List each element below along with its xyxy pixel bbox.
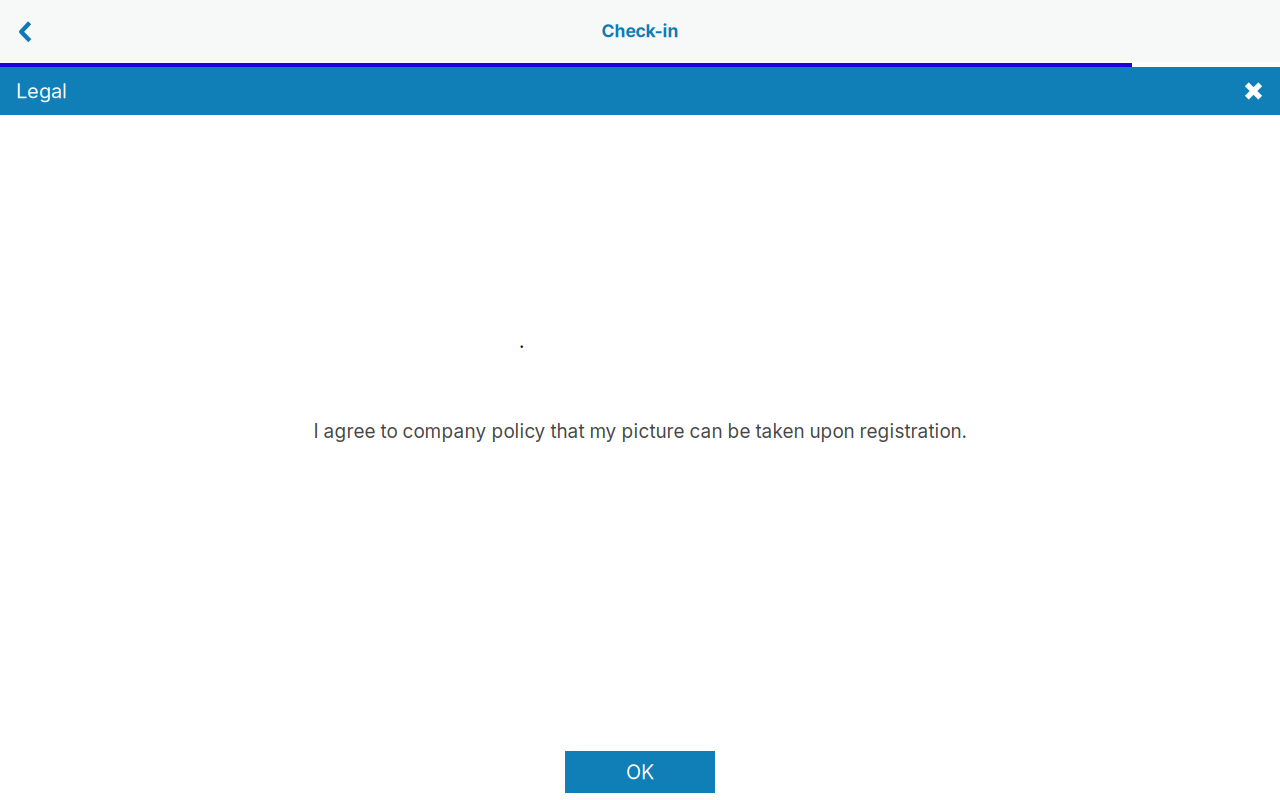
staticText: OK [626,760,654,784]
button[interactable]: Close [1229,67,1278,115]
button[interactable]: OK [565,751,715,793]
staticText: Legal [16,79,67,103]
staticText: I agree to company policy that my pictur… [313,419,966,442]
staticText: . [519,329,524,352]
staticText: Check-in [601,20,678,41]
button[interactable]: Back [1,1,51,63]
